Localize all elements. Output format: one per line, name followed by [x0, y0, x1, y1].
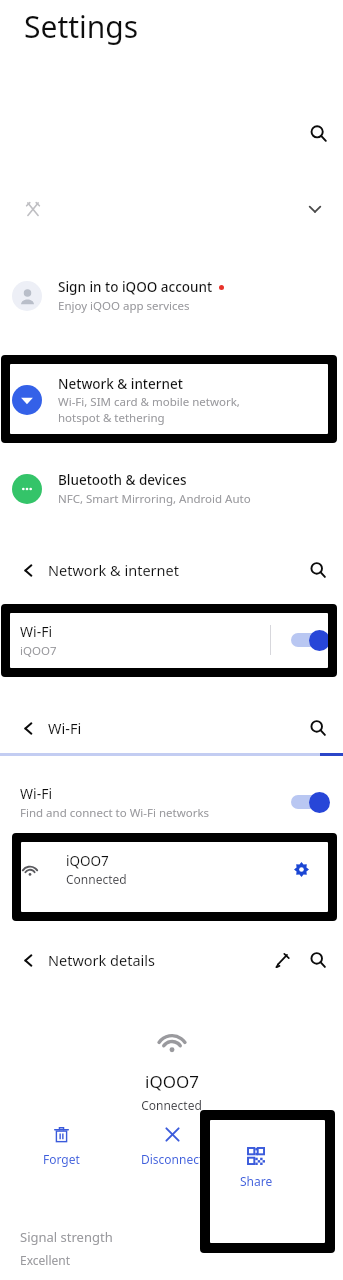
staticText: Sign in to iQOO account	[58, 278, 213, 296]
button[interactable]: Network & internet	[0, 372, 343, 428]
staticText: Enjoy iQOO app services	[58, 298, 190, 314]
staticText: Signal strength	[20, 1228, 113, 1246]
button[interactable]: Forget	[11, 1122, 111, 1167]
staticText: Network & internet	[48, 560, 179, 580]
staticText: NFC, Smart Mirroring, Android Auto	[58, 491, 251, 507]
staticText: Network details	[48, 950, 155, 970]
button[interactable]: Search	[302, 117, 334, 149]
button[interactable]: Search	[303, 945, 333, 975]
button[interactable]: Wi-Fi	[0, 612, 343, 668]
button[interactable]: Disconnect	[122, 1122, 222, 1167]
button[interactable]: Wi-Fi	[0, 775, 343, 829]
staticText: Wi-Fi	[48, 718, 82, 738]
button[interactable]: Edit	[267, 945, 297, 975]
staticText: Disconnect	[141, 1151, 204, 1167]
button[interactable]: Back	[14, 556, 42, 584]
staticText: hotspot & tethering	[58, 410, 165, 426]
button[interactable]: Tools	[18, 194, 48, 224]
button[interactable]: Share	[240, 1148, 273, 1189]
staticText: Find and connect to Wi-Fi networks	[20, 805, 210, 821]
staticText: Forget	[43, 1151, 80, 1167]
button[interactable]: iQOO7	[0, 840, 343, 898]
button[interactable]: Search	[303, 555, 333, 585]
staticText: Settings	[24, 6, 139, 47]
button[interactable]: Sign in to iQOO account	[0, 272, 343, 320]
staticText: Wi-Fi	[20, 622, 53, 641]
staticText: Connected	[141, 1097, 202, 1113]
staticText: Wi-Fi, SIM card & mobile network,	[58, 394, 240, 410]
button[interactable]: Network settings	[287, 855, 315, 883]
staticText: Share	[240, 1173, 273, 1189]
button[interactable]: Bluetooth & devices	[0, 466, 343, 512]
staticText: Wi-Fi	[20, 784, 53, 803]
staticText: Bluetooth & devices	[58, 471, 187, 489]
staticText: iQOO7	[66, 852, 109, 870]
button[interactable]: Wi-Fi toggle	[291, 791, 331, 813]
staticText: iQOO7	[145, 1070, 199, 1093]
staticText: Connected	[66, 871, 127, 887]
button[interactable]: Back	[14, 714, 42, 742]
button[interactable]: Wi-Fi toggle	[291, 629, 331, 651]
staticText: Excellent	[20, 1252, 71, 1268]
staticText: iQOO7	[20, 643, 57, 659]
staticText: Network & internet	[58, 375, 183, 393]
button[interactable]: Search	[303, 713, 333, 743]
button[interactable]: Expand	[300, 194, 330, 224]
button[interactable]: Share	[232, 1122, 332, 1167]
button[interactable]: Back	[14, 946, 42, 974]
